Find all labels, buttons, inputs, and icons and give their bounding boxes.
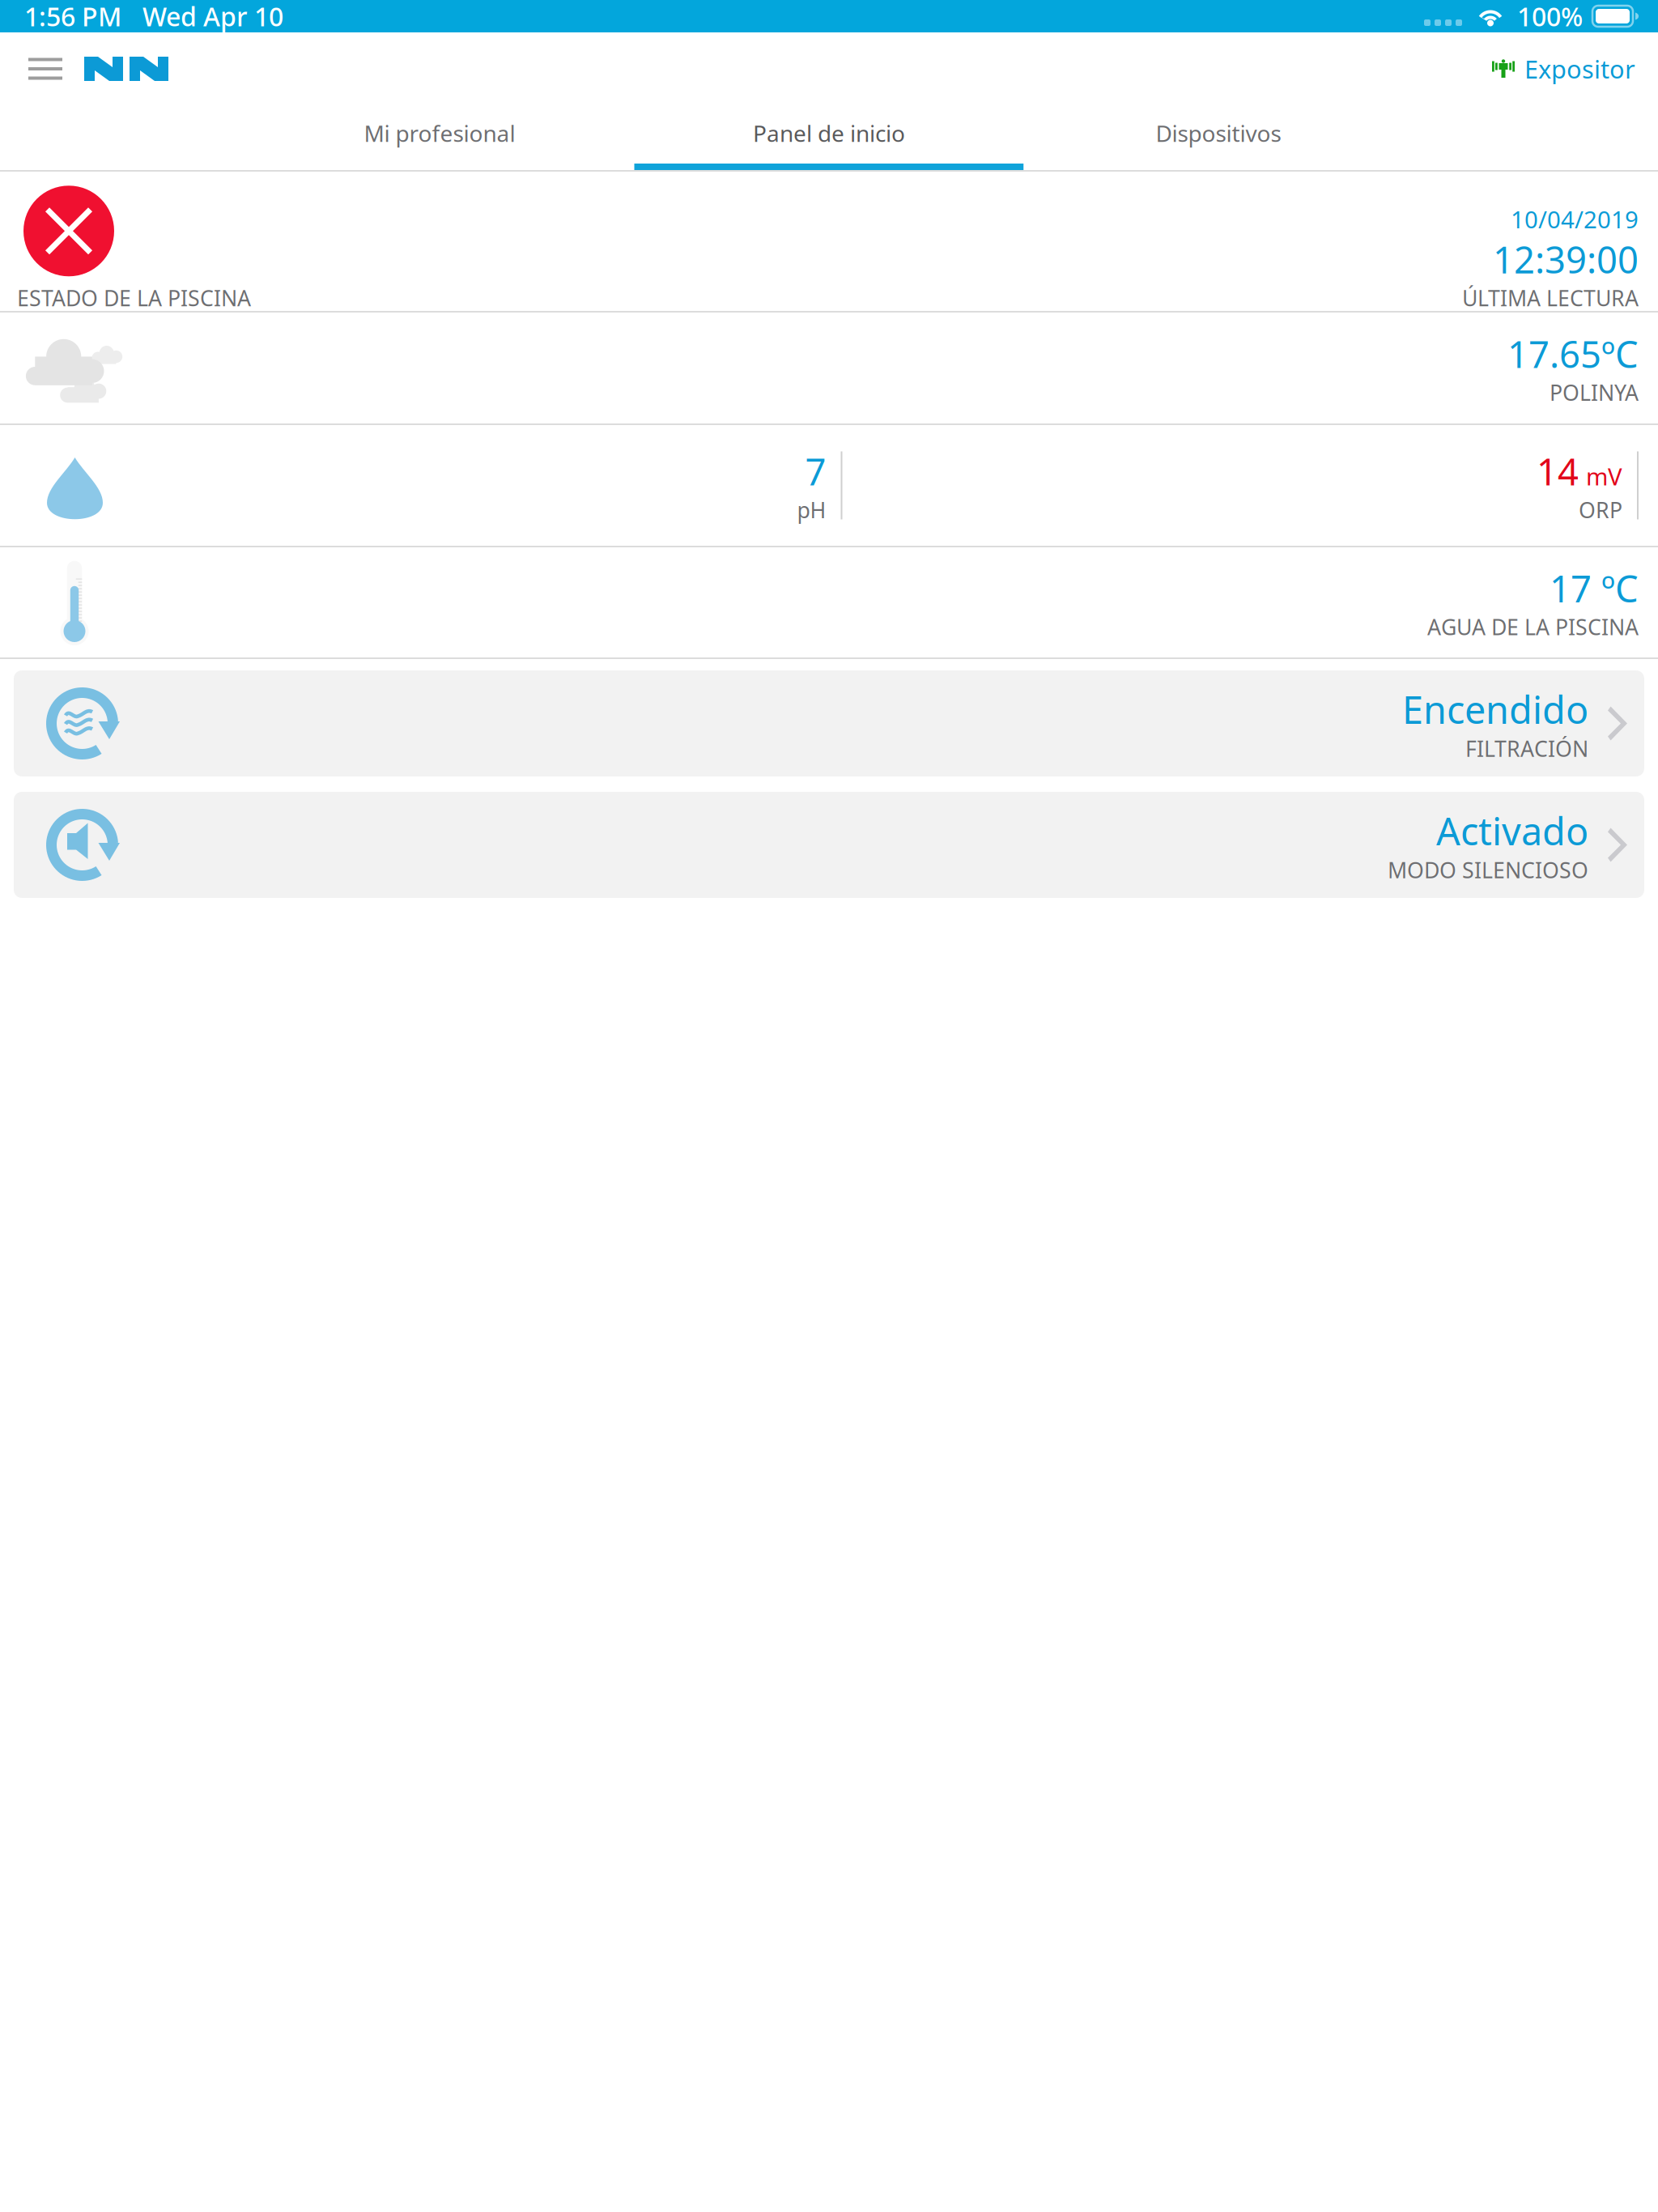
staticText: 100% — [1517, 0, 1583, 33]
staticText: 14 — [1537, 447, 1579, 495]
button[interactable]: Menu — [0, 42, 84, 96]
staticText: 17 ºC — [1550, 564, 1639, 612]
staticText: Activado — [1436, 805, 1588, 856]
staticText: ÚLTIMA LECTURA — [1462, 284, 1639, 312]
staticText: ORP — [1579, 495, 1622, 524]
button[interactable]: Panel de inicio — [634, 105, 1024, 170]
staticText: 12:39:00 — [1493, 235, 1639, 284]
staticText: Wed Apr 10 — [142, 0, 283, 33]
button[interactable]: Expositor — [1492, 41, 1658, 97]
staticText: FILTRACIÓN — [1465, 734, 1588, 763]
staticText: 1:56 PM — [24, 0, 121, 33]
staticText: AGUA DE LA PISCINA — [1427, 612, 1639, 641]
button[interactable]: Activado — [14, 792, 1644, 898]
staticText: Panel de inicio — [753, 118, 905, 148]
staticText: Expositor — [1524, 52, 1635, 85]
button[interactable]: Dispositivos — [1024, 105, 1413, 170]
staticText: MODO SILENCIOSO — [1388, 856, 1588, 884]
staticText: 17.65ºC — [1507, 329, 1639, 378]
staticText: 7 — [805, 447, 826, 495]
staticText: mV — [1586, 460, 1622, 492]
staticText: 10/04/2019 — [1511, 203, 1639, 235]
staticText: Mi profesional — [364, 118, 515, 148]
button[interactable]: Encendido — [14, 670, 1644, 776]
staticText: Dispositivos — [1156, 118, 1281, 148]
staticText: Encendido — [1402, 684, 1588, 734]
staticText: pH — [797, 495, 826, 524]
button[interactable]: Mi profesional — [245, 105, 634, 170]
staticText: ESTADO DE LA PISCINA — [17, 284, 251, 312]
staticText: POLINYA — [1550, 378, 1639, 407]
